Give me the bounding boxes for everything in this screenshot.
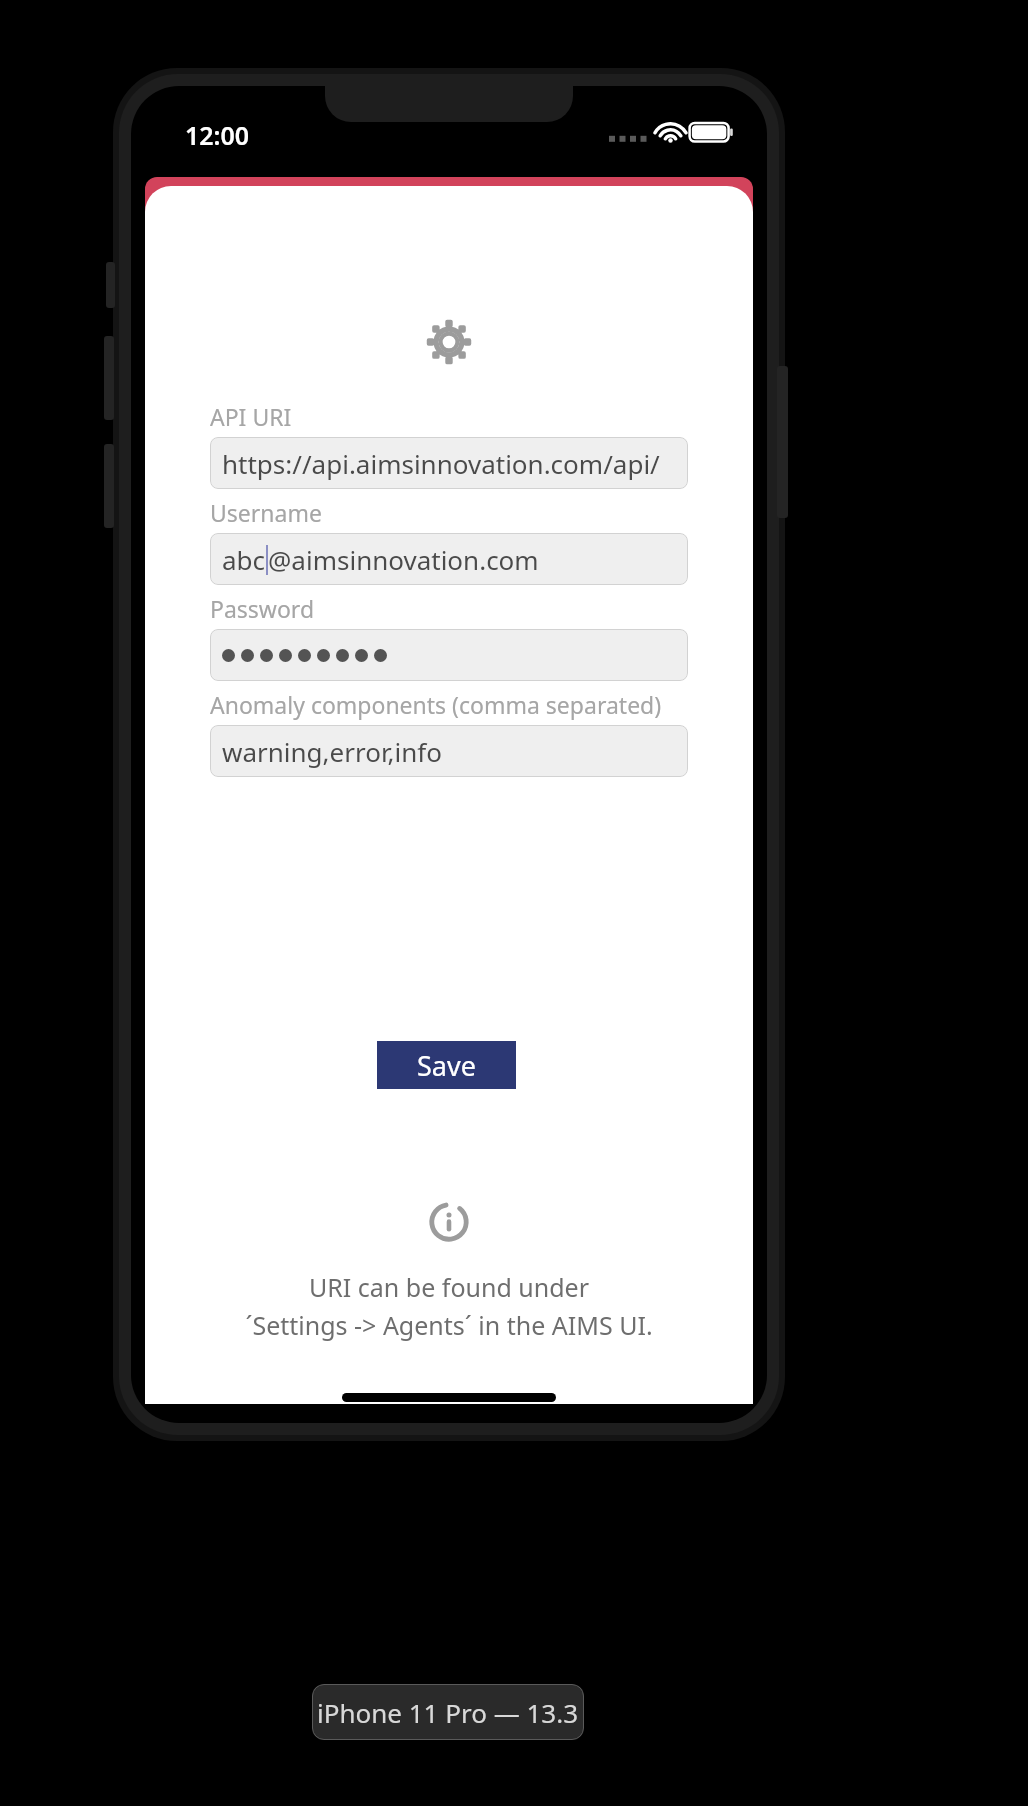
button[interactable]: iPhone 11 Pro — 13.3 [312, 1684, 584, 1740]
button[interactable]: https://api.aimsinnovation.com/api/envir… [210, 437, 688, 489]
button[interactable] [210, 629, 688, 681]
staticText: 12:00 [185, 118, 250, 152]
staticText: iPhone 11 Pro — 13.3 [317, 1695, 579, 1730]
staticText: ´Settings -> Agents´ in the AIMS UI. [245, 1308, 653, 1342]
staticText: @aimsinnovation.com [268, 542, 539, 577]
staticText: https://api.aimsinnovation.com/api/envir… [222, 446, 676, 481]
button[interactable]: Information [426, 1199, 472, 1245]
staticText: warning,error,info [222, 734, 442, 769]
staticText: abc [222, 542, 266, 577]
staticText: Password [210, 593, 315, 624]
staticText: Username [210, 497, 322, 528]
button[interactable]: warning,error,info [210, 725, 688, 777]
staticText: Save [417, 1047, 476, 1084]
button[interactable]: Settings [422, 315, 476, 369]
staticText: API URI [210, 401, 292, 432]
button[interactable]: Save [377, 1041, 516, 1089]
staticText: Anomaly components (comma separated) [210, 689, 662, 720]
staticText: URI can be found under [309, 1270, 589, 1304]
button[interactable]: abc [210, 533, 688, 585]
